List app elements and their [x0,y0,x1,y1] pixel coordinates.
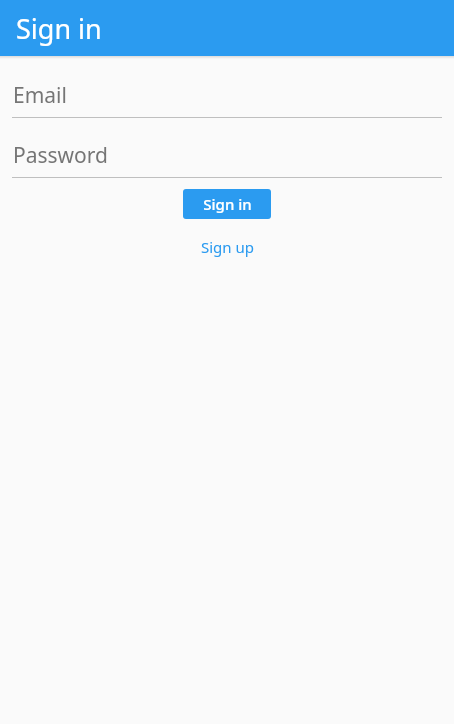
button[interactable]: Password [12,118,442,178]
staticText: Sign up [201,237,254,257]
staticText: Sign in [203,194,252,214]
button[interactable]: Email [12,59,442,118]
staticText: Email [13,81,67,110]
staticText: Sign in [16,10,102,47]
button[interactable]: Sign in [183,189,271,219]
staticText: Password [13,141,108,170]
button[interactable]: Sign up [191,233,264,261]
